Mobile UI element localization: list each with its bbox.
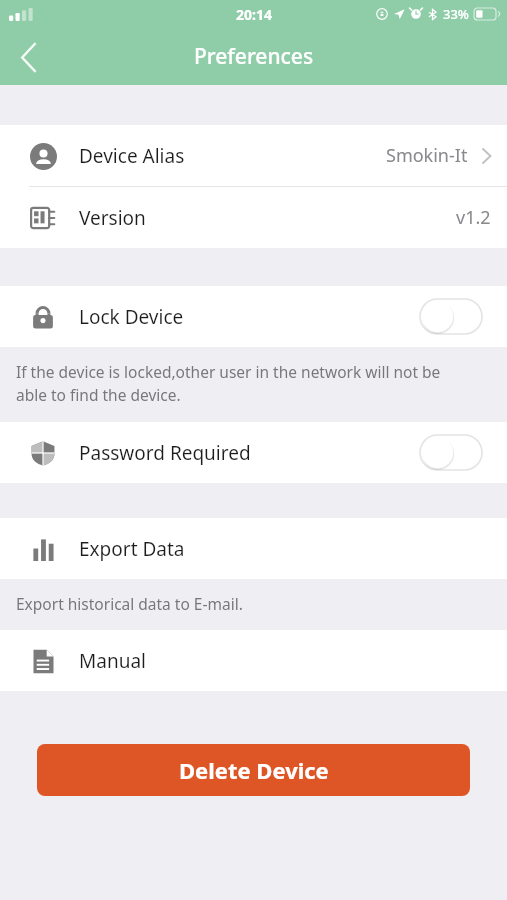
staticText: Smokin-It	[386, 143, 468, 168]
staticText: If the device is locked,other user in th…	[16, 361, 441, 406]
staticText: 20:14	[236, 5, 272, 24]
staticText: Manual	[79, 648, 146, 674]
button[interactable]: Device Alias	[0, 125, 507, 186]
staticText: Export historical data to E-mail.	[16, 593, 243, 614]
button[interactable]: Toggle	[420, 299, 482, 334]
button[interactable]: Manual	[0, 630, 507, 691]
staticText: Preferences	[194, 42, 314, 71]
button[interactable]: Password Required	[0, 422, 507, 483]
staticText: Lock Device	[79, 304, 184, 330]
button[interactable]: Export Data	[0, 518, 507, 579]
button[interactable]: Back	[0, 29, 56, 85]
staticText: 33%	[443, 5, 469, 23]
staticText: Version	[79, 205, 146, 231]
staticText: Delete Device	[179, 755, 329, 785]
staticText: v1.2	[456, 205, 491, 230]
button[interactable]: Version	[0, 187, 507, 248]
button[interactable]: Lock Device	[0, 286, 507, 347]
staticText: Password Required	[79, 440, 251, 466]
staticText: Export Data	[79, 536, 185, 562]
button[interactable]: Delete Device	[37, 744, 470, 796]
staticText: Device Alias	[79, 143, 185, 169]
button[interactable]: Toggle	[420, 435, 482, 470]
